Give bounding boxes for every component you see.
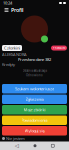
button[interactable]: Zgłoszenia — [2, 94, 67, 104]
staticText: Odnowiono — [26, 73, 43, 77]
staticText: Wyloguj się — [24, 128, 44, 133]
button[interactable]: Menu — [2, 6, 11, 14]
staticText: Profil — [11, 6, 24, 14]
staticText: Nie jestem — [6, 136, 25, 141]
staticText: Szukam wolontariusza — [15, 86, 54, 91]
staticText: Moje zbiórki — [23, 107, 45, 112]
button[interactable]: Szukam wolontariusza — [2, 84, 67, 93]
staticText: Powiadomienia — [21, 118, 47, 123]
button[interactable]: Nie jestem — [0, 136, 69, 141]
button[interactable]: PREMIUM — [51, 45, 67, 50]
staticText: Kredyty — [2, 62, 15, 67]
staticText: PREMIUM — [53, 46, 65, 50]
staticText: Ostatnia aktualizacja — [22, 69, 46, 72]
button[interactable]: Moje zbiórki — [2, 105, 67, 114]
staticText: ALEKSANDRA — [2, 52, 27, 57]
staticText: Zgłoszenia — [25, 97, 43, 102]
staticText: Przesłano dane 382 — [18, 57, 51, 62]
staticText: Członkini — [4, 45, 20, 51]
staticText: 10:24 — [3, 0, 12, 6]
button[interactable]: Członkini — [2, 45, 22, 51]
button[interactable]: Wyloguj się — [2, 126, 67, 135]
button[interactable]: Powiadomienia — [2, 115, 67, 125]
staticText: ◁ — [15, 143, 19, 149]
